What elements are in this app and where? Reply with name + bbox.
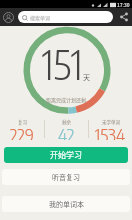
staticText: 听音复习 bbox=[52, 172, 80, 182]
staticText: 229 bbox=[10, 123, 34, 140]
staticText: 未学单词 bbox=[102, 119, 120, 126]
button[interactable]: 我的单词本 bbox=[2, 196, 130, 212]
staticText: 我的单词本 bbox=[49, 199, 84, 209]
staticText: 距离完成计划还剩 bbox=[46, 96, 87, 103]
button[interactable]: 搜索单词 bbox=[18, 11, 113, 23]
button[interactable] bbox=[119, 12, 129, 22]
button[interactable]: 听音复习 bbox=[2, 169, 130, 185]
staticText: 42 bbox=[58, 123, 75, 140]
staticText: 复习 bbox=[18, 119, 27, 126]
staticText: 1534 bbox=[95, 123, 126, 140]
staticText: 151 bbox=[42, 39, 83, 89]
staticText: 开始学习 bbox=[50, 149, 82, 161]
staticText: 剩余 bbox=[62, 119, 71, 126]
button[interactable]: 开始学习 bbox=[4, 147, 128, 163]
button[interactable] bbox=[3, 12, 14, 23]
staticText: 天 bbox=[83, 72, 90, 82]
staticText: 搜索单词 bbox=[30, 14, 51, 21]
staticText: 17:30 bbox=[117, 1, 130, 8]
